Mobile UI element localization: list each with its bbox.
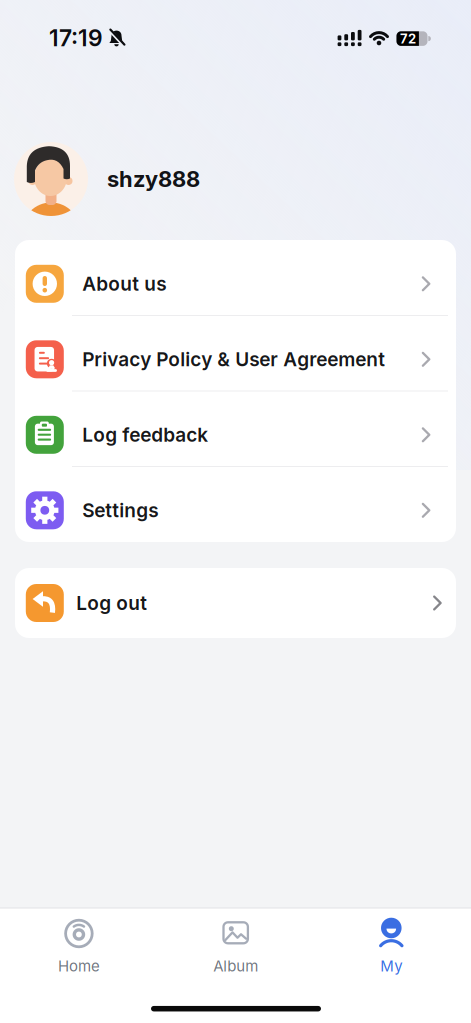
button[interactable]: Album bbox=[181, 911, 291, 983]
button[interactable]: Home bbox=[24, 911, 134, 983]
staticText: Log feedback bbox=[82, 423, 208, 446]
staticText: Privacy Policy & User Agreement bbox=[82, 348, 385, 371]
staticText: My bbox=[380, 957, 402, 975]
button[interactable]: Log out bbox=[15, 568, 456, 638]
staticText: Log out bbox=[76, 591, 147, 614]
button[interactable]: Settings bbox=[15, 473, 456, 548]
staticText: Album bbox=[213, 957, 258, 975]
button[interactable]: About us bbox=[15, 246, 456, 322]
button[interactable]: Log feedback bbox=[15, 397, 456, 473]
staticText: shzy888 bbox=[107, 166, 200, 192]
button[interactable]: Privacy Policy & User Agreement bbox=[15, 322, 456, 397]
staticText: Home bbox=[58, 957, 100, 975]
staticText: 72 bbox=[400, 31, 416, 47]
button[interactable]: My bbox=[336, 911, 446, 983]
staticText: 17:19 bbox=[49, 24, 103, 52]
staticText: Settings bbox=[82, 499, 158, 522]
staticText: About us bbox=[82, 272, 166, 295]
